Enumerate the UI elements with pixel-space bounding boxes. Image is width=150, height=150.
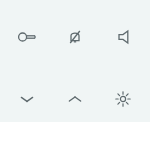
button[interactable]: Collapse — [54, 78, 96, 120]
button[interactable]: Brightness — [102, 78, 144, 120]
button[interactable]: Expand — [6, 78, 48, 120]
button[interactable]: Pair device — [6, 16, 48, 58]
button[interactable]: Notifications off — [54, 16, 96, 58]
button[interactable]: Volume — [102, 16, 144, 58]
